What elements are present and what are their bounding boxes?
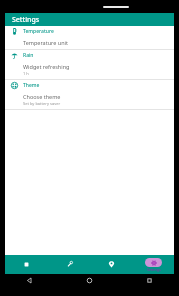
staticText: Set by battery saver [23,101,61,106]
button[interactable]: Temperature [5,26,174,37]
button[interactable]: Places [90,255,132,274]
button[interactable]: Choose theme [5,91,174,109]
staticText: Temperature [23,28,54,35]
staticText: Settings [147,267,161,272]
staticText: Choose theme [23,93,61,100]
staticText: 1 h [23,71,29,76]
staticText: Widget refreshing [23,63,70,70]
button[interactable]: Home [59,274,119,287]
staticText: Temperature unit [23,39,68,46]
button[interactable]: Tools [48,255,90,274]
button[interactable]: Recent apps [119,274,179,287]
staticText: Settings [12,15,40,25]
staticText: Theme [23,82,40,89]
button[interactable]: Today [5,255,48,274]
button[interactable]: Back [0,274,59,287]
button[interactable]: Settings [132,255,174,274]
button[interactable]: Widget refreshing [5,61,174,79]
button[interactable]: Theme [5,80,174,91]
button[interactable]: Rain [5,50,174,61]
staticText: Rain [23,52,34,59]
button[interactable]: Temperature unit [5,37,174,49]
